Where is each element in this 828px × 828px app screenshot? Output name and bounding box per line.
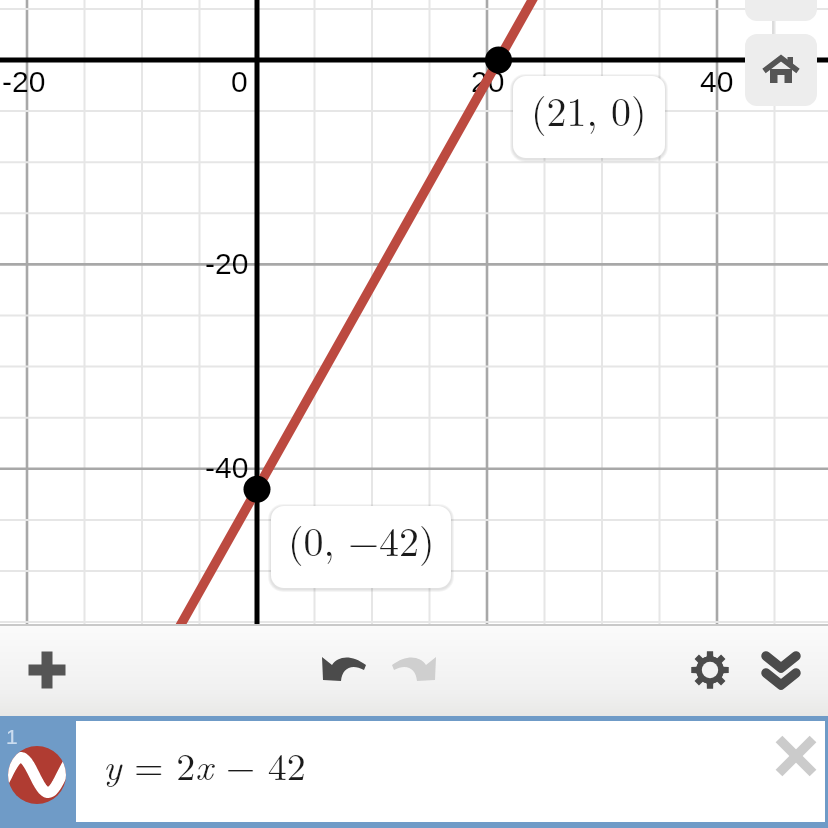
button[interactable]: y = 2x − 42 [76,721,825,822]
staticText: -20 [205,247,249,281]
button[interactable]: Undo [307,632,379,704]
button[interactable]: Settings [674,632,746,704]
staticText: 20 [471,65,505,99]
staticText: 0 [231,65,248,99]
staticText: -20 [2,65,46,99]
staticText: (21, 0) [531,81,647,138]
staticText: (0, −42) [288,511,435,568]
button[interactable]: Expression colour [0,716,76,828]
staticText: -40 [205,451,249,485]
button[interactable]: Add expression [11,632,83,704]
button[interactable]: Home [745,34,817,106]
staticText: 40 [700,65,734,99]
staticText: y = 2x − 42 [103,737,306,791]
button[interactable]: (21, 0) [513,76,665,158]
button[interactable]: Collapse keypad [745,632,817,704]
button[interactable]: Delete expression [765,725,827,787]
button[interactable]: Zoom out [745,0,817,21]
button[interactable]: Redo [379,632,451,704]
button[interactable]: (0, −42) [271,506,451,588]
staticText: 1 [6,725,18,748]
